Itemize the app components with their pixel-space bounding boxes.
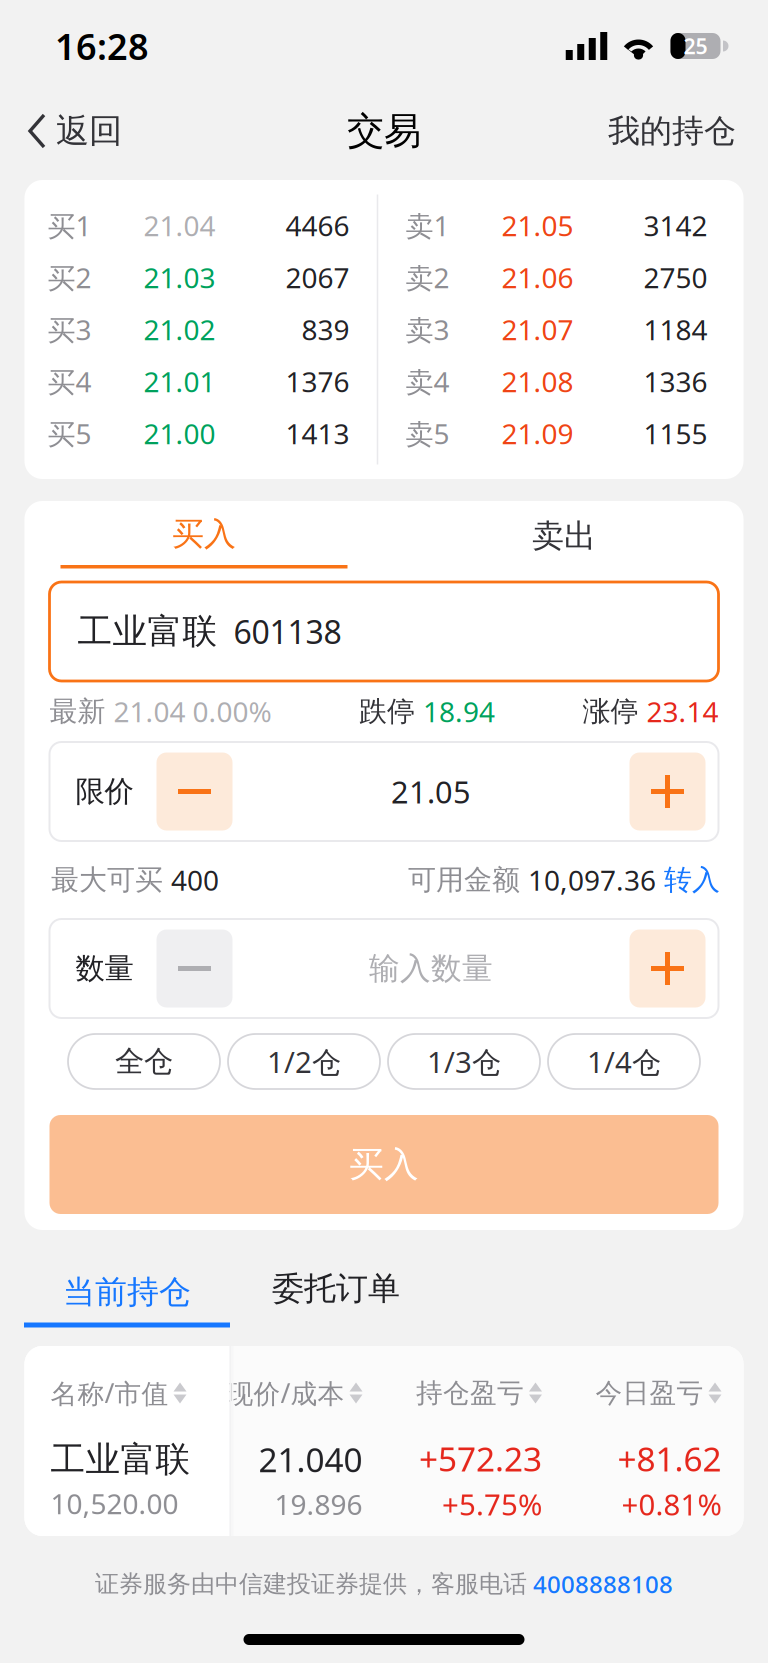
- button[interactable]: 返回: [0, 92, 138, 170]
- button[interactable]: 买入: [49, 1115, 718, 1214]
- staticText: 卖4: [405, 363, 449, 400]
- button[interactable]: 卖出: [420, 501, 707, 575]
- staticText: 我的持仓: [608, 111, 736, 151]
- staticText: 10,520.00: [50, 1485, 178, 1522]
- staticText: 2750: [643, 259, 707, 296]
- staticText: 现价/成本: [226, 1375, 344, 1411]
- staticText: 21.040: [258, 1437, 362, 1482]
- button[interactable]: 4008888108: [527, 1568, 673, 1600]
- button[interactable]: [156, 752, 232, 830]
- button[interactable]: 我的持仓: [592, 92, 768, 170]
- staticText: 1155: [643, 415, 707, 452]
- staticText: +572.23: [419, 1436, 542, 1481]
- staticText: 1/3仓: [427, 1042, 501, 1081]
- staticText: 21.07: [501, 311, 573, 348]
- staticText: 卖1: [405, 207, 449, 244]
- staticText: 买1: [47, 207, 91, 244]
- staticText: 25: [683, 32, 707, 60]
- staticText: 买3: [47, 311, 91, 348]
- button[interactable]: 转入: [656, 863, 720, 897]
- staticText: 601138: [217, 610, 341, 653]
- staticText: 返回: [56, 110, 122, 151]
- staticText: 买入: [172, 514, 236, 554]
- staticText: 最大可买: [51, 863, 171, 897]
- staticText: 21.05: [391, 771, 471, 812]
- staticText: 21.08: [501, 363, 573, 400]
- staticText: 4008888108: [527, 1568, 673, 1600]
- staticText: 可用金额: [408, 863, 528, 897]
- staticText: 839: [301, 311, 349, 348]
- staticText: 1/4仓: [587, 1042, 661, 1081]
- staticText: 最新: [49, 694, 113, 729]
- staticText: 卖5: [405, 415, 449, 452]
- staticText: 交易: [347, 108, 421, 154]
- button[interactable]: 当前持仓: [24, 1261, 230, 1337]
- staticText: 2067: [285, 259, 349, 296]
- staticText: 买入: [349, 1143, 419, 1186]
- staticText: 21.04: [143, 207, 215, 244]
- button[interactable]: 工业富联: [49, 582, 718, 681]
- staticText: 21.03: [143, 259, 215, 296]
- staticText: 1376: [285, 363, 349, 400]
- staticText: 委托订单: [272, 1269, 400, 1308]
- button[interactable]: [629, 929, 705, 1007]
- staticText: 当前持仓: [63, 1272, 191, 1312]
- staticText: 限价: [75, 773, 133, 809]
- staticText: 21.01: [143, 363, 215, 400]
- staticText: 工业富联: [50, 1438, 190, 1481]
- staticText: 买5: [47, 415, 91, 452]
- staticText: 21.04 0.00%: [113, 693, 271, 730]
- staticText: 19.896: [274, 1485, 362, 1523]
- staticText: 卖出: [532, 516, 596, 556]
- staticText: 涨停: [582, 694, 646, 729]
- staticText: 转入: [656, 863, 720, 897]
- staticText: 21.09: [501, 415, 573, 452]
- staticText: 3142: [643, 207, 707, 244]
- button[interactable]: 买入: [60, 503, 347, 573]
- staticText: +0.81%: [621, 1485, 721, 1524]
- button[interactable]: 1/3仓: [388, 1034, 540, 1089]
- staticText: 跌停: [359, 694, 423, 729]
- staticText: 4466: [285, 207, 349, 244]
- staticText: 23.14: [646, 693, 718, 730]
- staticText: 今日盈亏: [595, 1377, 703, 1409]
- staticText: 18.94: [423, 693, 495, 730]
- staticText: 证券服务由中信建投证券提供，客服电话: [95, 1569, 527, 1599]
- staticText: 21.00: [143, 415, 215, 452]
- staticText: 数量: [75, 950, 133, 986]
- staticText: 21.05: [501, 207, 573, 244]
- staticText: 全仓: [115, 1043, 173, 1079]
- button[interactable]: [156, 929, 232, 1007]
- staticText: 卖2: [405, 259, 449, 296]
- button[interactable]: [629, 752, 705, 830]
- staticText: 16:28: [55, 22, 149, 70]
- staticText: 21.06: [501, 259, 573, 296]
- button[interactable]: 全仓: [68, 1034, 220, 1089]
- staticText: 持仓盈亏: [416, 1377, 524, 1409]
- staticText: 1336: [643, 363, 707, 400]
- staticText: 400: [171, 861, 219, 899]
- staticText: 1413: [285, 415, 349, 452]
- button[interactable]: 1/2仓: [228, 1034, 380, 1089]
- staticText: 名称/市值: [50, 1375, 168, 1411]
- staticText: 21.02: [143, 311, 215, 348]
- staticText: 卖3: [405, 311, 449, 348]
- staticText: 工业富联: [77, 610, 217, 653]
- staticText: 10,097.36: [528, 861, 656, 899]
- staticText: +81.62: [617, 1436, 721, 1481]
- staticText: 买2: [47, 259, 91, 296]
- staticText: +5.75%: [442, 1485, 542, 1524]
- staticText: 输入数量: [369, 950, 493, 987]
- staticText: 买4: [47, 363, 91, 400]
- button[interactable]: 委托订单: [230, 1258, 400, 1341]
- staticText: 1184: [643, 311, 707, 348]
- staticText: 1/2仓: [267, 1042, 341, 1081]
- button[interactable]: 1/4仓: [548, 1034, 700, 1089]
